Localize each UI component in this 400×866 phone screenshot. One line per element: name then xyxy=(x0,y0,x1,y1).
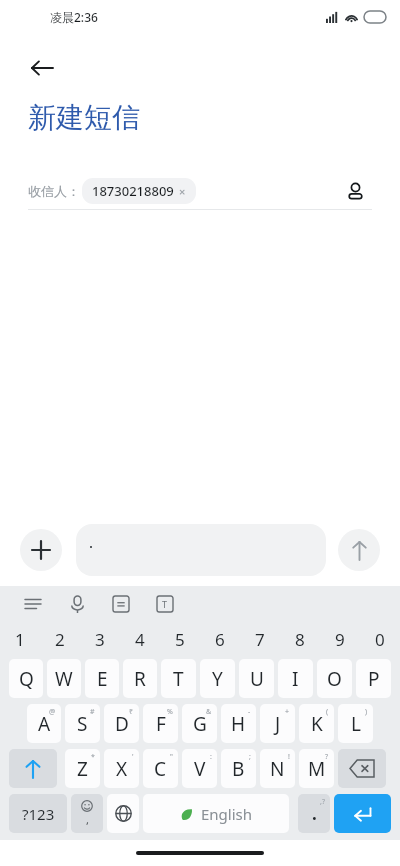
button[interactable]: 7 xyxy=(240,622,280,656)
button[interactable]: T xyxy=(161,659,196,698)
staticText: E xyxy=(97,666,108,692)
staticText: 9 xyxy=(335,628,345,651)
button[interactable]: G xyxy=(182,704,217,743)
button[interactable]: X xyxy=(104,749,139,788)
staticText: 0 xyxy=(375,628,385,651)
staticText: ! xyxy=(288,752,290,762)
button[interactable]: H xyxy=(221,704,256,743)
button[interactable]: W xyxy=(47,659,81,698)
staticText: 2 xyxy=(55,628,65,651)
button[interactable]: M xyxy=(299,749,334,788)
button[interactable]: Add attachment xyxy=(20,529,62,571)
staticText: @ xyxy=(49,707,56,717)
staticText: I xyxy=(292,666,299,692)
button[interactable]: 5 xyxy=(160,622,200,656)
button[interactable]: D xyxy=(104,704,139,743)
staticText: 1 xyxy=(15,628,25,651)
staticText: & xyxy=(206,707,212,717)
button[interactable] xyxy=(9,749,57,788)
button[interactable]: Z xyxy=(65,749,100,788)
button[interactable]: E xyxy=(85,659,119,698)
button[interactable]: F xyxy=(143,704,178,743)
staticText: S xyxy=(77,711,88,737)
staticText: D xyxy=(115,711,129,737)
button[interactable]: V xyxy=(182,749,217,788)
button[interactable]: 9 xyxy=(320,622,360,656)
staticText: . xyxy=(312,802,317,825)
button[interactable]: Send xyxy=(338,529,380,571)
button[interactable]: Q xyxy=(9,659,43,698)
staticText: A xyxy=(38,711,51,737)
button[interactable]: Back xyxy=(22,48,62,88)
button[interactable]: Clipboard xyxy=(106,589,136,619)
staticText: P xyxy=(368,666,380,692)
staticText: % xyxy=(167,707,173,717)
button[interactable]: , xyxy=(71,794,103,833)
button[interactable]: Menu xyxy=(18,589,48,619)
button[interactable]: N xyxy=(260,749,295,788)
staticText: # xyxy=(90,707,95,717)
button[interactable]: English xyxy=(143,794,289,833)
button[interactable] xyxy=(107,794,139,833)
staticText: K xyxy=(311,711,323,737)
staticText: T xyxy=(173,666,184,692)
button[interactable]: J xyxy=(260,704,295,743)
staticText: 5 xyxy=(175,628,185,651)
staticText: - xyxy=(248,707,251,717)
button[interactable] xyxy=(338,749,386,788)
button[interactable]: O xyxy=(317,659,352,698)
button[interactable]: L xyxy=(338,704,373,743)
button[interactable]: 1 xyxy=(0,622,40,656)
staticText: ? xyxy=(325,752,329,762)
staticText: 7 xyxy=(255,628,265,651)
staticText: 新建短信 xyxy=(28,100,140,135)
button[interactable]: C xyxy=(143,749,178,788)
button[interactable]: Pick contact xyxy=(338,174,372,208)
staticText: × xyxy=(179,184,186,199)
button[interactable]: 2 xyxy=(40,622,80,656)
staticText: 3 xyxy=(95,628,105,651)
staticText: Y xyxy=(212,666,223,692)
staticText: ₹ xyxy=(129,707,134,717)
button[interactable]: K xyxy=(299,704,334,743)
staticText: 收信人： xyxy=(28,183,80,199)
staticText: ?123 xyxy=(22,804,55,824)
other: Enter xyxy=(353,804,372,823)
button[interactable]: 3 xyxy=(80,622,120,656)
button[interactable]: Enter xyxy=(334,794,391,833)
button[interactable]: Text style xyxy=(150,589,180,619)
staticText: V xyxy=(194,756,206,782)
staticText: + xyxy=(285,707,290,717)
button[interactable]: 8 xyxy=(280,622,320,656)
staticText: 8 xyxy=(295,628,305,651)
button[interactable]: 4 xyxy=(120,622,160,656)
button[interactable]: . xyxy=(298,794,330,833)
button[interactable]: U xyxy=(239,659,274,698)
staticText: , xyxy=(86,812,89,827)
staticText: 6 xyxy=(215,628,225,651)
button[interactable]: B xyxy=(221,749,256,788)
button[interactable]: 0 xyxy=(360,622,400,656)
staticText: " xyxy=(170,752,173,762)
staticText: L xyxy=(351,711,361,737)
staticText: G xyxy=(193,711,207,737)
button[interactable]: Voice input xyxy=(62,589,92,619)
staticText: 凌晨2:36 xyxy=(50,9,98,25)
staticText: W xyxy=(55,666,73,692)
button[interactable]: A xyxy=(27,704,61,743)
button[interactable]: I xyxy=(278,659,313,698)
staticText: : xyxy=(210,752,212,762)
staticText: M xyxy=(308,756,326,782)
button[interactable] xyxy=(76,524,326,576)
staticText: N xyxy=(270,756,285,782)
button[interactable]: P xyxy=(356,659,391,698)
staticText: J xyxy=(275,711,281,737)
button[interactable]: 18730218809 xyxy=(82,178,196,204)
button[interactable]: S xyxy=(65,704,100,743)
staticText: Q xyxy=(19,666,34,692)
button[interactable]: ?123 xyxy=(9,794,67,833)
staticText: B xyxy=(232,756,245,782)
button[interactable]: 6 xyxy=(200,622,240,656)
button[interactable]: R xyxy=(123,659,157,698)
button[interactable]: Y xyxy=(200,659,235,698)
